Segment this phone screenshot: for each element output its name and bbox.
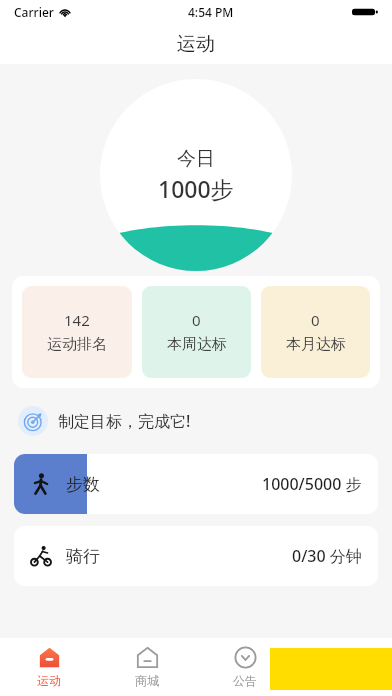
staticText: 142 [64,310,90,330]
staticText: Carrier [14,4,54,20]
button[interactable]: Steps [14,454,378,514]
button[interactable]: Store [98,638,196,696]
staticText: 运动 [177,32,215,56]
button[interactable]: Sport [0,638,98,696]
button[interactable]: 今日 [100,79,292,271]
staticText: 运动 [37,673,61,688]
button[interactable]: Cycling [14,526,378,586]
button[interactable]: 0 [142,286,251,378]
staticText: 今日 [177,147,215,171]
staticText: 0/30 分钟 [292,545,362,567]
button[interactable]: 142 [22,286,132,378]
staticText: 商城 [135,673,159,688]
staticText: 步数 [66,474,100,495]
staticText: 0 [192,310,201,330]
button[interactable]: Announcements [196,638,294,696]
staticText: 4:54 PM [188,4,234,20]
staticText: 公告 [233,673,257,688]
staticText: 1000步 [158,173,234,204]
button[interactable]: Goal [0,388,392,454]
other: Steps [30,473,52,495]
other: Sport [38,646,61,669]
other: Announcements [234,646,257,669]
button[interactable]: 0 [261,286,370,378]
other: Profile [332,646,355,669]
other: Store [136,646,159,669]
staticText: 运动排名 [47,335,107,354]
other: Cycling [30,545,52,567]
staticText: 制定目标，完成它! [58,410,191,432]
button[interactable]: Profile [294,638,392,696]
staticText: 0 [311,310,320,330]
staticText: 骑行 [66,546,100,567]
staticText: 本月达标 [286,335,346,354]
staticText: 本周达标 [167,335,227,354]
staticText: 1000/5000 步 [262,473,362,495]
other: Goal [24,412,43,431]
